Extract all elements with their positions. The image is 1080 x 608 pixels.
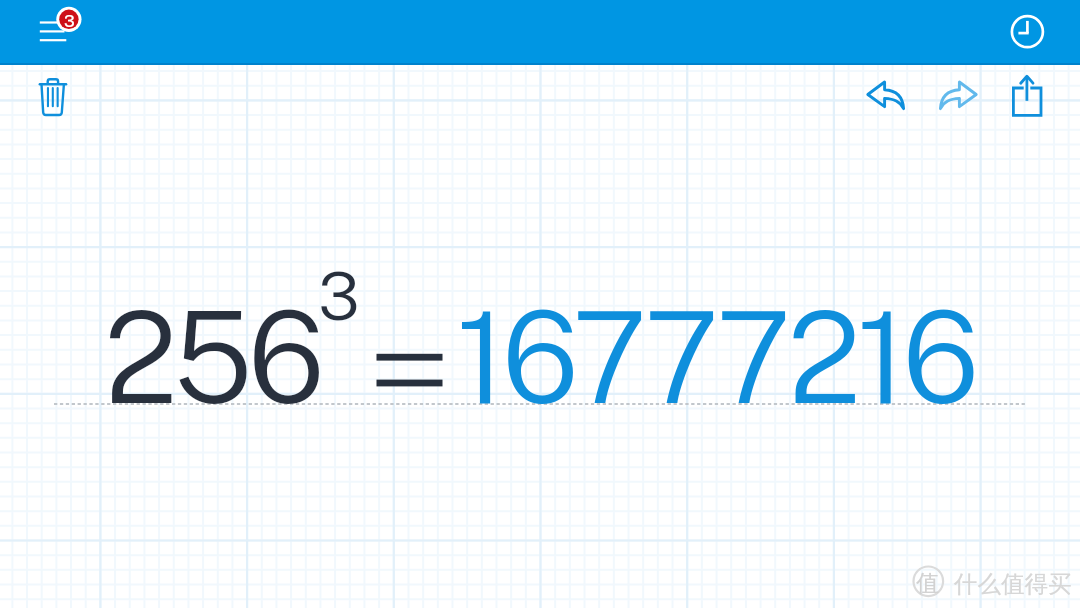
- button[interactable]: History: [1005, 9, 1051, 55]
- staticText: 值: [916, 569, 939, 598]
- button[interactable]: Menu: [26, 0, 86, 60]
- button[interactable]: Clear all: [30, 70, 78, 118]
- button[interactable]: Handwriting area: [0, 0, 1080, 608]
- staticText: 256: [104, 283, 321, 431]
- button[interactable]: Undo: [858, 70, 918, 130]
- staticText: 16777216: [456, 283, 976, 431]
- staticText: 什么值得买: [954, 569, 1072, 599]
- button[interactable]: Share: [1000, 70, 1060, 130]
- staticText: 3: [64, 11, 75, 31]
- button[interactable]: Redo: [926, 70, 986, 130]
- staticText: 3: [318, 256, 360, 335]
